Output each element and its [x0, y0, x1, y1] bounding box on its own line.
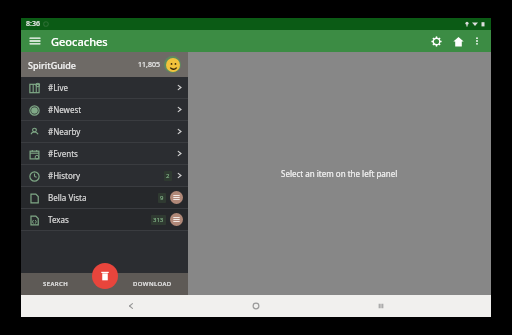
- staticText: #Events: [48, 148, 78, 159]
- button[interactable]: Reorder Texas: [170, 213, 183, 226]
- staticText: Geocaches: [51, 34, 108, 49]
- staticText: #Nearby: [48, 126, 81, 137]
- staticText: #History: [48, 170, 81, 181]
- button[interactable]: SpiritGuide: [21, 52, 188, 77]
- staticText: #Live: [48, 82, 68, 93]
- button[interactable]: #Events: [21, 143, 188, 164]
- staticText: 313: [153, 216, 164, 224]
- staticText: Select an item on the left panel: [281, 168, 398, 179]
- button[interactable]: #Newest: [21, 99, 188, 120]
- button[interactable]: Reorder Bella Vista: [170, 191, 183, 204]
- button[interactable]: Home: [241, 295, 271, 317]
- staticText: SpiritGuide: [28, 59, 77, 71]
- button[interactable]: Open navigation drawer: [27, 33, 43, 49]
- staticText: #Newest: [48, 104, 82, 115]
- staticText: Texas: [48, 214, 69, 225]
- button[interactable]: More options: [469, 33, 485, 49]
- button[interactable]: #History: [21, 165, 188, 186]
- button[interactable]: Delete: [92, 263, 118, 289]
- button[interactable]: Texas: [21, 209, 188, 230]
- button[interactable]: Recent apps: [366, 295, 396, 317]
- staticText: 8:36: [26, 19, 40, 29]
- button[interactable]: #Live: [21, 77, 188, 98]
- staticText: DOWNLOAD: [133, 280, 172, 288]
- button[interactable]: #Nearby: [21, 121, 188, 142]
- staticText: SEARCH: [43, 280, 69, 288]
- staticText: 11,805: [138, 60, 160, 70]
- staticText: 9: [160, 194, 164, 202]
- button[interactable]: Settings: [427, 32, 445, 50]
- staticText: Bella Vista: [48, 192, 87, 203]
- button[interactable]: Home: [449, 32, 467, 50]
- button[interactable]: DOWNLOAD: [117, 273, 188, 295]
- button[interactable]: SEARCH: [21, 273, 91, 295]
- button[interactable]: Back: [116, 295, 146, 317]
- button[interactable]: Bella Vista: [21, 187, 188, 208]
- staticText: 2: [166, 172, 170, 180]
